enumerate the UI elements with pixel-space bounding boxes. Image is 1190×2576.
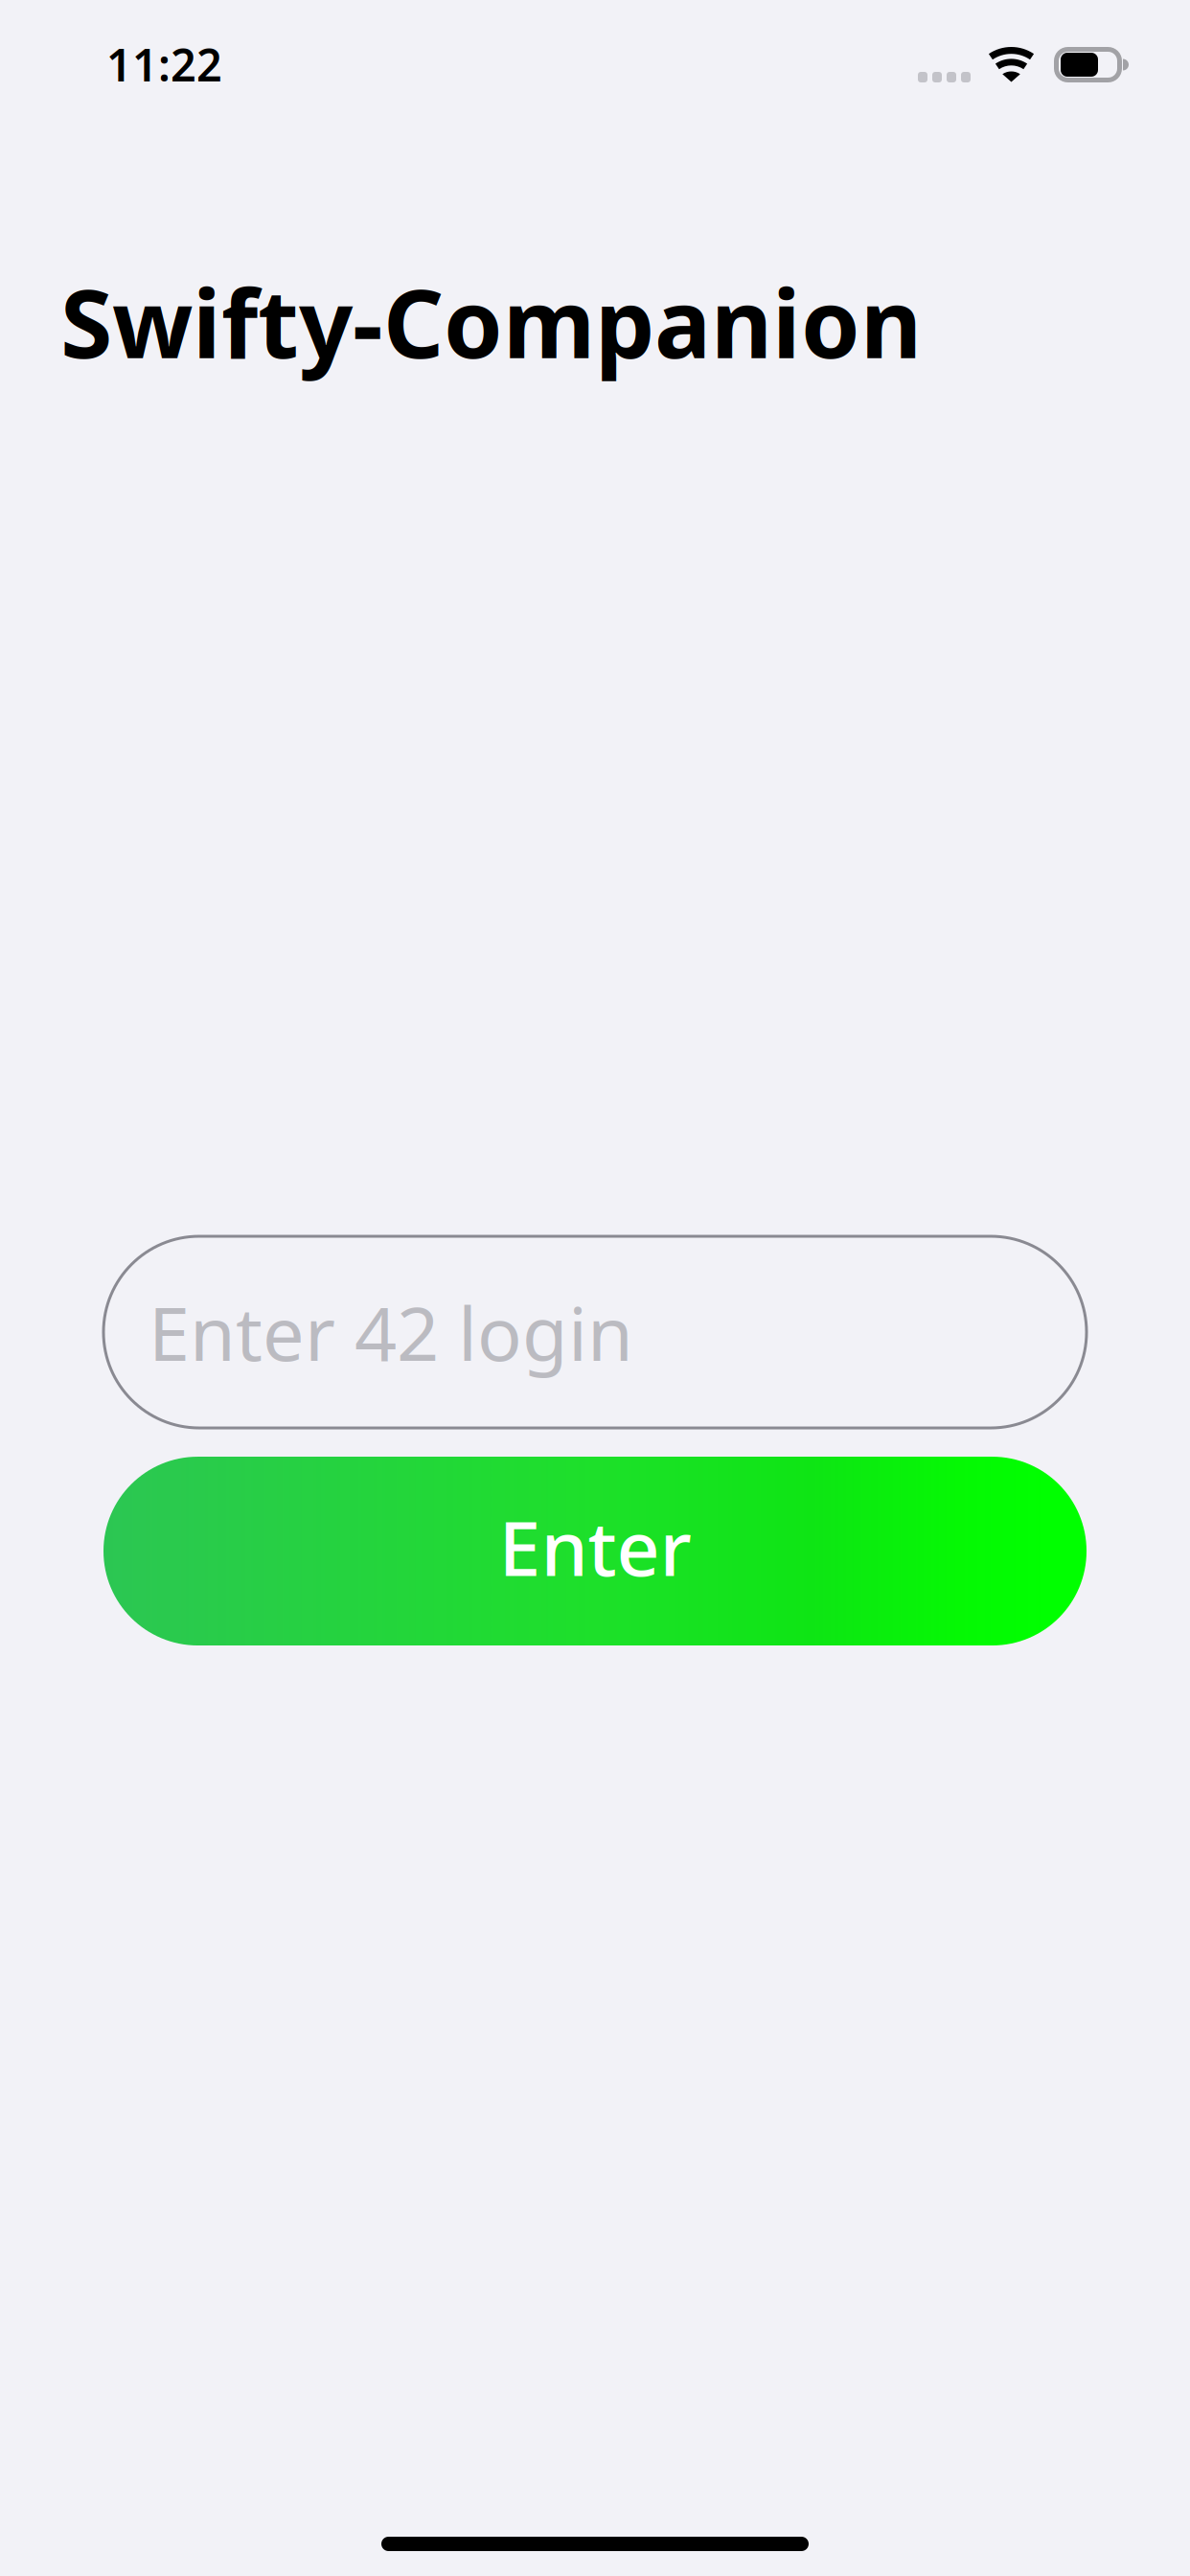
staticText: Enter [499,1497,691,1597]
staticText: Enter 42 login [149,1283,633,1381]
button[interactable]: Enter [0,1457,1190,1645]
button[interactable]: Enter 42 login [0,1236,1190,1428]
staticText: Swifty-Companion [60,259,922,384]
staticText: 11:22 [106,34,222,94]
